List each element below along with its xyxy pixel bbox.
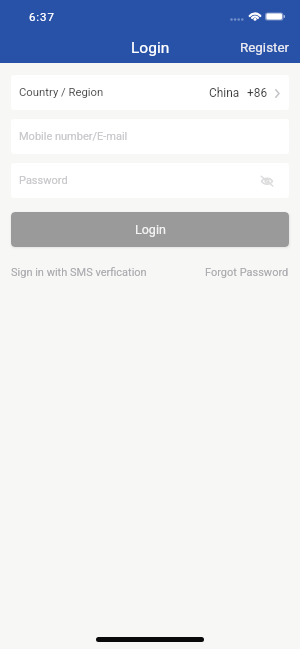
button[interactable]: Sign in with SMS verfication [11, 264, 147, 281]
staticText: Sign in with SMS verfication [11, 266, 147, 279]
staticText: Mobile number/E-mail [19, 130, 128, 143]
button[interactable]: Login [11, 212, 289, 247]
staticText: Password [19, 174, 68, 187]
staticText: Login [135, 222, 166, 237]
button[interactable]: Register [240, 36, 300, 60]
staticText: 6:37 [29, 10, 55, 23]
staticText: Forgot Password [205, 266, 289, 279]
button[interactable]: Mobile number/E-mail [11, 119, 289, 154]
staticText: Country / Region [19, 86, 104, 99]
button[interactable]: Password [11, 163, 289, 198]
staticText: Register [240, 40, 290, 56]
staticText: +86 [247, 86, 268, 100]
button[interactable]: Show password [258, 172, 275, 189]
button[interactable]: Country / Region [11, 75, 289, 110]
staticText: Login [131, 39, 170, 57]
button[interactable]: Forgot Password [205, 264, 289, 281]
staticText: China [209, 86, 240, 100]
